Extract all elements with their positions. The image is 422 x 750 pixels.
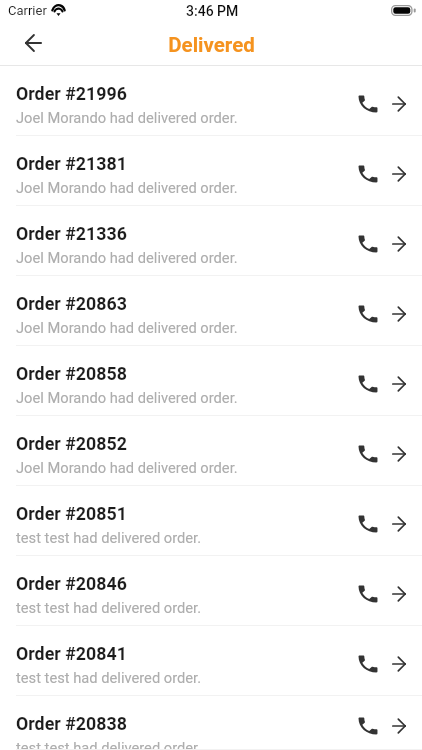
- button[interactable]: Call: [353, 649, 383, 679]
- button[interactable]: Open order: [386, 511, 412, 537]
- button[interactable]: Call: [353, 711, 383, 741]
- button[interactable]: Call: [353, 159, 383, 189]
- staticText: Joel Morando had delivered order.: [16, 459, 238, 476]
- button[interactable]: Order #20858: [0, 346, 422, 416]
- button[interactable]: Order #20851: [0, 486, 422, 556]
- staticText: test test had delivered order.: [16, 669, 202, 686]
- button[interactable]: Open order: [386, 651, 412, 677]
- button[interactable]: Call: [353, 369, 383, 399]
- staticText: test test had delivered order.: [16, 529, 202, 546]
- button[interactable]: Call: [353, 579, 383, 609]
- staticText: Order #20863: [16, 293, 127, 314]
- staticText: Order #20846: [16, 573, 127, 594]
- button[interactable]: Call: [353, 439, 383, 469]
- button[interactable]: Open order: [386, 371, 412, 397]
- button[interactable]: Order #21996: [0, 66, 422, 136]
- button[interactable]: Call: [353, 89, 383, 119]
- button[interactable]: Order #20846: [0, 556, 422, 626]
- staticText: test test had delivered order.: [16, 739, 202, 750]
- staticText: Order #20841: [16, 643, 127, 664]
- button[interactable]: Order #21381: [0, 136, 422, 206]
- button[interactable]: Order #20863: [0, 276, 422, 346]
- staticText: Order #21336: [16, 223, 127, 244]
- staticText: Joel Morando had delivered order.: [16, 179, 238, 196]
- staticText: Order #20852: [16, 433, 127, 454]
- staticText: Joel Morando had delivered order.: [16, 249, 238, 266]
- button[interactable]: Open order: [386, 161, 412, 187]
- staticText: Order #21996: [16, 83, 127, 104]
- staticText: Order #20851: [16, 503, 127, 524]
- staticText: Order #20858: [16, 363, 127, 384]
- button[interactable]: Open order: [386, 581, 412, 607]
- staticText: Joel Morando had delivered order.: [16, 319, 238, 336]
- button[interactable]: Call: [353, 509, 383, 539]
- button[interactable]: Open order: [386, 231, 412, 257]
- staticText: Joel Morando had delivered order.: [16, 109, 238, 126]
- staticText: Carrier: [8, 3, 47, 18]
- staticText: Joel Morando had delivered order.: [16, 389, 238, 406]
- button[interactable]: Order #20841: [0, 626, 422, 696]
- button[interactable]: Order #20838: [0, 696, 422, 750]
- staticText: 3:46 PM: [186, 3, 239, 19]
- button[interactable]: Order #21336: [0, 206, 422, 276]
- button[interactable]: Open order: [386, 441, 412, 467]
- button[interactable]: Open order: [386, 301, 412, 327]
- button[interactable]: Open order: [386, 91, 412, 117]
- staticText: Order #20838: [16, 713, 127, 734]
- button[interactable]: Open order: [386, 713, 412, 739]
- staticText: test test had delivered order.: [16, 599, 202, 616]
- button[interactable]: Back: [12, 28, 52, 62]
- button[interactable]: Call: [353, 299, 383, 329]
- button[interactable]: Order #20852: [0, 416, 422, 486]
- staticText: Delivered: [168, 33, 255, 57]
- button[interactable]: Call: [353, 229, 383, 259]
- staticText: Order #21381: [16, 153, 127, 174]
